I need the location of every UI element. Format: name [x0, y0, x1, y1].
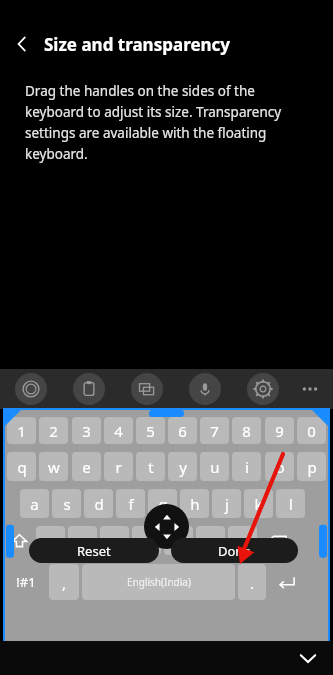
staticText: q [17, 457, 27, 477]
staticText: u [210, 457, 220, 477]
button[interactable]: m [228, 526, 257, 555]
staticText: Size and transparency [44, 33, 231, 56]
button[interactable]: , [49, 564, 79, 600]
staticText: y [179, 457, 187, 477]
staticText: !#1 [16, 573, 36, 591]
staticText: Drag the handles on the sides of the key… [25, 82, 313, 163]
button[interactable]: Enter [269, 564, 303, 600]
button[interactable]: w [39, 452, 68, 481]
staticText: , [62, 573, 67, 593]
button[interactable]: s [52, 489, 81, 518]
button[interactable] [4, 526, 34, 555]
button[interactable]: 1 [7, 417, 36, 444]
button[interactable]: 3 [72, 417, 101, 444]
button[interactable]: a [20, 489, 49, 518]
staticText: m [235, 531, 250, 551]
staticText: c [111, 531, 119, 551]
staticText: 3 [82, 421, 91, 441]
button[interactable]: Keyboard modes [131, 373, 163, 405]
staticText: 8 [242, 421, 251, 441]
button[interactable]: 0 [297, 417, 326, 444]
button[interactable]: e [72, 452, 101, 481]
staticText: z [47, 531, 55, 551]
button[interactable]: Back [0, 26, 44, 62]
button[interactable]: y [168, 452, 197, 481]
button[interactable]: English(India) [82, 564, 235, 600]
staticText: 5 [146, 421, 155, 441]
button[interactable]: Reset [29, 538, 159, 563]
staticText: k [254, 494, 263, 514]
button[interactable]: More options [293, 373, 327, 405]
staticText: r [115, 457, 122, 477]
staticText: n [206, 531, 216, 551]
staticText: w [48, 457, 60, 477]
button[interactable]: l [276, 489, 305, 518]
button[interactable]: !#1 [6, 564, 46, 600]
button[interactable]: f [116, 489, 145, 518]
staticText: e [82, 457, 91, 477]
staticText: g [158, 494, 168, 514]
button[interactable]: 5 [136, 417, 165, 444]
button[interactable]: . [238, 564, 266, 600]
button[interactable]: Hide keyboard [293, 643, 323, 673]
staticText: b [174, 531, 184, 551]
staticText: v [143, 531, 151, 551]
button[interactable]: Stickers [15, 373, 47, 405]
button[interactable]: Done [171, 538, 298, 563]
button[interactable]: i [232, 452, 261, 481]
staticText: 2 [49, 421, 58, 441]
staticText: 9 [275, 421, 284, 441]
button[interactable]: c [100, 526, 129, 555]
staticText: a [30, 494, 39, 514]
staticText: 7 [210, 421, 219, 441]
staticText: t [148, 457, 154, 477]
button[interactable]: 2 [39, 417, 68, 444]
staticText: o [275, 457, 285, 477]
button[interactable]: u [200, 452, 229, 481]
button[interactable]: z [36, 526, 65, 555]
button[interactable]: v [132, 526, 161, 555]
staticText: f [128, 494, 134, 514]
button[interactable]: Voice input [189, 373, 221, 405]
button[interactable]: Clipboard [73, 373, 105, 405]
staticText: l [289, 494, 293, 514]
button[interactable]: 9 [265, 417, 294, 444]
button[interactable]: g [148, 489, 177, 518]
staticText: 4 [114, 421, 123, 441]
button[interactable]: 6 [168, 417, 197, 444]
button[interactable]: t [136, 452, 165, 481]
button[interactable]: Settings [247, 373, 279, 405]
staticText: s [63, 494, 71, 514]
button[interactable]: Move keyboard [144, 504, 189, 549]
button[interactable]: p [297, 452, 326, 481]
staticText: d [94, 494, 104, 514]
button[interactable]: o [265, 452, 294, 481]
staticText: h [190, 494, 200, 514]
button[interactable] [262, 526, 292, 555]
button[interactable]: q [7, 452, 36, 481]
staticText: x [79, 531, 87, 551]
button[interactable]: d [84, 489, 113, 518]
staticText: Done [218, 542, 251, 560]
staticText: 6 [178, 421, 187, 441]
button[interactable]: r [104, 452, 133, 481]
staticText: p [307, 457, 317, 477]
staticText: Reset [77, 542, 111, 560]
button[interactable]: b [164, 526, 193, 555]
staticText: 0 [307, 421, 316, 441]
button[interactable]: x [68, 526, 97, 555]
button[interactable]: 7 [200, 417, 229, 444]
button[interactable]: 4 [104, 417, 133, 444]
button[interactable]: k [244, 489, 273, 518]
staticText: 1 [17, 421, 26, 441]
staticText: English(India) [127, 575, 191, 589]
staticText: i [245, 457, 249, 477]
button[interactable]: n [196, 526, 225, 555]
staticText: . [250, 573, 255, 593]
button[interactable]: h [180, 489, 209, 518]
staticText: j [225, 494, 229, 514]
button[interactable]: j [212, 489, 241, 518]
button[interactable]: 8 [232, 417, 261, 444]
